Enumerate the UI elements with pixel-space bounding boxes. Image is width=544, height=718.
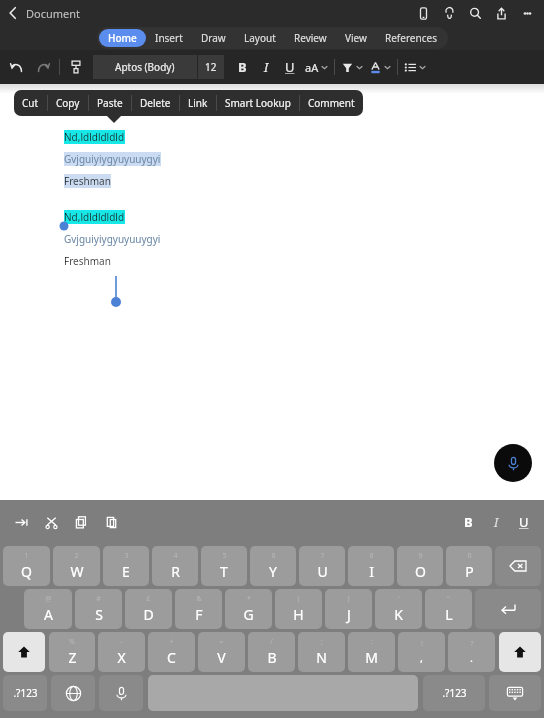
staticText: 0 — [467, 551, 472, 561]
button[interactable]: ; — [298, 632, 345, 672]
button[interactable]: Home — [99, 29, 146, 47]
button[interactable]: # — [75, 589, 122, 629]
staticText: T — [220, 562, 228, 581]
staticText: Review — [294, 31, 327, 45]
button[interactable]: Paste — [98, 509, 124, 535]
button[interactable]: aA — [302, 60, 331, 75]
button[interactable]: 0 — [446, 546, 492, 586]
button[interactable]: Smart Lookup — [217, 90, 299, 116]
staticText: N — [316, 648, 327, 667]
button[interactable]: Highlight — [338, 61, 366, 74]
staticText: X — [117, 648, 126, 667]
button[interactable]: ' — [375, 589, 422, 629]
staticText: Gvjguiyiygyuyuuygyi — [64, 232, 161, 246]
button[interactable]: + — [148, 632, 195, 672]
staticText: I — [494, 513, 499, 531]
button[interactable]: 3 — [103, 546, 149, 586]
button[interactable]: More options — [514, 0, 540, 26]
button[interactable]: & — [175, 589, 222, 629]
staticText: + — [169, 637, 174, 647]
staticText: Cut — [22, 96, 39, 110]
button[interactable]: U — [278, 55, 302, 79]
button[interactable]: Draw — [192, 29, 235, 47]
button[interactable]: ) — [325, 589, 372, 629]
button[interactable]: ? — [448, 632, 495, 672]
button[interactable]: Dictate — [494, 444, 532, 482]
button[interactable]: Cut — [38, 509, 64, 535]
staticText: I — [369, 562, 374, 581]
button[interactable]: Paste — [89, 90, 131, 116]
button[interactable]: 8 — [348, 546, 394, 586]
staticText: 2 — [74, 551, 79, 561]
button[interactable]: Cut — [14, 90, 47, 116]
button[interactable]: .?123 — [3, 675, 47, 711]
button[interactable]: @ — [24, 589, 72, 629]
button[interactable]: Format painter — [63, 54, 89, 80]
button[interactable]: Ideas — [436, 0, 462, 26]
button[interactable]: - — [98, 632, 145, 672]
button[interactable]: Link — [180, 90, 216, 116]
button[interactable]: B — [454, 508, 482, 536]
button[interactable]: Undo — [4, 54, 30, 80]
button[interactable]: Change language — [51, 675, 95, 711]
staticText: R — [171, 562, 180, 581]
staticText: / — [270, 637, 273, 647]
button[interactable]: I — [482, 508, 510, 536]
button[interactable]: 1 — [3, 546, 50, 586]
staticText: . — [470, 650, 473, 665]
button[interactable]: Backspace — [495, 546, 541, 586]
button[interactable]: .?123 — [423, 675, 485, 711]
button[interactable]: Review — [285, 29, 336, 47]
button[interactable]: 6 — [250, 546, 296, 586]
staticText: Document — [26, 6, 81, 21]
button[interactable]: Return — [475, 589, 541, 629]
button[interactable]: Voice input — [99, 675, 143, 711]
button[interactable]: Hide keyboard — [489, 675, 541, 711]
staticText: A — [44, 605, 53, 624]
button[interactable]: : — [348, 632, 395, 672]
button[interactable]: View — [336, 29, 376, 47]
button[interactable]: Redo — [30, 54, 56, 80]
staticText: Z — [68, 648, 77, 667]
button[interactable]: Bullet list — [401, 61, 429, 74]
staticText: " — [447, 594, 450, 604]
button[interactable]: Share — [488, 0, 514, 26]
button[interactable]: Search — [462, 0, 488, 26]
button[interactable]: References — [376, 29, 446, 47]
button[interactable]: % — [49, 632, 95, 672]
button[interactable]: Mobile view — [410, 0, 436, 26]
button[interactable]: Delete — [132, 90, 179, 116]
button[interactable]: Shift — [499, 632, 541, 672]
button[interactable]: Shift — [3, 632, 45, 672]
button[interactable]: ! — [398, 632, 445, 672]
button[interactable]: I — [254, 55, 278, 79]
button[interactable]: 5 — [201, 546, 247, 586]
button[interactable]: 4 — [152, 546, 198, 586]
button[interactable]: B — [230, 55, 254, 79]
button[interactable]: / — [248, 632, 295, 672]
button[interactable]: Copy — [48, 90, 88, 116]
button[interactable]: Comment — [300, 90, 363, 116]
button[interactable]: Tab — [8, 509, 34, 535]
button[interactable]: 9 — [397, 546, 443, 586]
staticText: .?123 — [442, 686, 467, 700]
button[interactable]: Aptos (Body) — [93, 55, 197, 79]
button[interactable]: 2 — [53, 546, 100, 586]
button[interactable]: U — [510, 508, 538, 536]
button[interactable]: Back — [0, 0, 26, 26]
button[interactable]: Insert — [146, 29, 192, 47]
button[interactable]: Copy — [68, 509, 94, 535]
button[interactable]: £ — [125, 589, 172, 629]
button[interactable]: Font color — [366, 61, 394, 74]
button[interactable]: 12 — [198, 55, 224, 79]
button[interactable]: " — [425, 589, 472, 629]
button[interactable]: = — [198, 632, 245, 672]
staticText: C — [167, 648, 176, 667]
button[interactable]: ( — [275, 589, 322, 629]
button[interactable]: * — [225, 589, 272, 629]
button[interactable]: 7 — [299, 546, 345, 586]
staticText: , — [420, 650, 423, 665]
staticText: V — [217, 648, 226, 667]
button[interactable]: Layout — [235, 29, 285, 47]
